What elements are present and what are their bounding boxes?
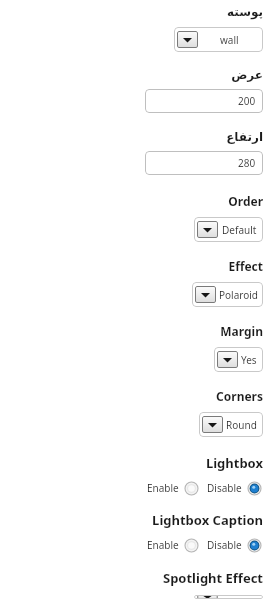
staticText: Lightbox xyxy=(0,454,263,472)
button[interactable]: Lightbox Caption Enable xyxy=(145,536,200,554)
button[interactable]: Spotlight Effect xyxy=(194,595,263,599)
staticText: Default xyxy=(222,223,257,237)
staticText: wall xyxy=(220,33,239,47)
staticText: Corners xyxy=(0,388,263,404)
staticText: 200 xyxy=(238,94,256,108)
staticText: عرض xyxy=(0,68,263,82)
staticText: Yes xyxy=(241,353,257,367)
button[interactable]: 280 xyxy=(145,151,263,175)
button[interactable]: 200 xyxy=(145,89,263,113)
staticText: Round xyxy=(226,418,257,432)
staticText: Default xyxy=(222,595,257,599)
button[interactable]: Order xyxy=(194,217,263,242)
staticText: Disable xyxy=(207,481,242,495)
button[interactable]: Lightbox Disable xyxy=(205,479,263,497)
staticText: Spotlight Effect xyxy=(0,569,263,587)
staticText: Disable xyxy=(207,538,242,552)
button[interactable]: Margin xyxy=(214,347,263,372)
button[interactable]: Effect xyxy=(192,282,263,307)
staticText: Enable xyxy=(147,538,179,552)
button[interactable]: Lightbox Caption Disable xyxy=(205,536,263,554)
staticText: Polaroid xyxy=(219,288,258,302)
button[interactable]: پوسته xyxy=(174,27,263,52)
staticText: Lightbox Caption xyxy=(0,511,263,529)
staticText: Enable xyxy=(147,481,179,495)
button[interactable]: Lightbox Enable xyxy=(145,479,200,497)
staticText: Order xyxy=(0,193,263,209)
staticText: پوسته xyxy=(0,5,263,19)
staticText: ارتفاع xyxy=(0,130,263,144)
staticText: Effect xyxy=(0,258,263,274)
staticText: Margin xyxy=(0,323,263,339)
staticText: 280 xyxy=(238,156,256,170)
button[interactable]: Corners xyxy=(199,412,263,437)
